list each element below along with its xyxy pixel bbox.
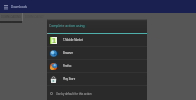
button[interactable]: Browser: [47, 47, 147, 59]
button[interactable]: DOWNLOADING: [0, 13, 22, 21]
staticText: Use by default for this action: [56, 92, 92, 96]
staticText: Downloads: [11, 5, 27, 9]
staticText: Browser: [63, 51, 74, 55]
button[interactable]: Open navigation menu: [0, 0, 11, 13]
button[interactable]: Use by default for this action: [47, 86, 147, 100]
staticText: Complete action using: [49, 23, 85, 28]
staticText: Play Store: [63, 77, 76, 81]
staticText: T-Mobile Market: [63, 38, 83, 42]
button[interactable]: Firefox: [47, 60, 147, 72]
button[interactable]: T-Mobile Market: [47, 34, 147, 46]
button[interactable]: Play Store: [47, 73, 147, 85]
staticText: DOWNLOADING: [1, 15, 21, 19]
staticText: Firefox: [63, 64, 72, 68]
